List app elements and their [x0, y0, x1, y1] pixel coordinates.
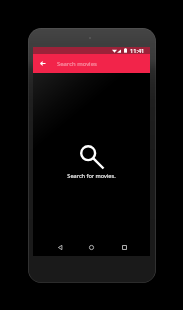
button[interactable]: Home: [84, 240, 98, 254]
button[interactable]: Navigate up: [34, 54, 51, 73]
staticText: Search for movies.: [67, 172, 116, 180]
staticText: 11:41: [130, 47, 145, 54]
button[interactable]: Back: [53, 240, 67, 254]
button[interactable]: Recent apps: [117, 240, 131, 254]
staticText: Search movies: [57, 60, 97, 68]
